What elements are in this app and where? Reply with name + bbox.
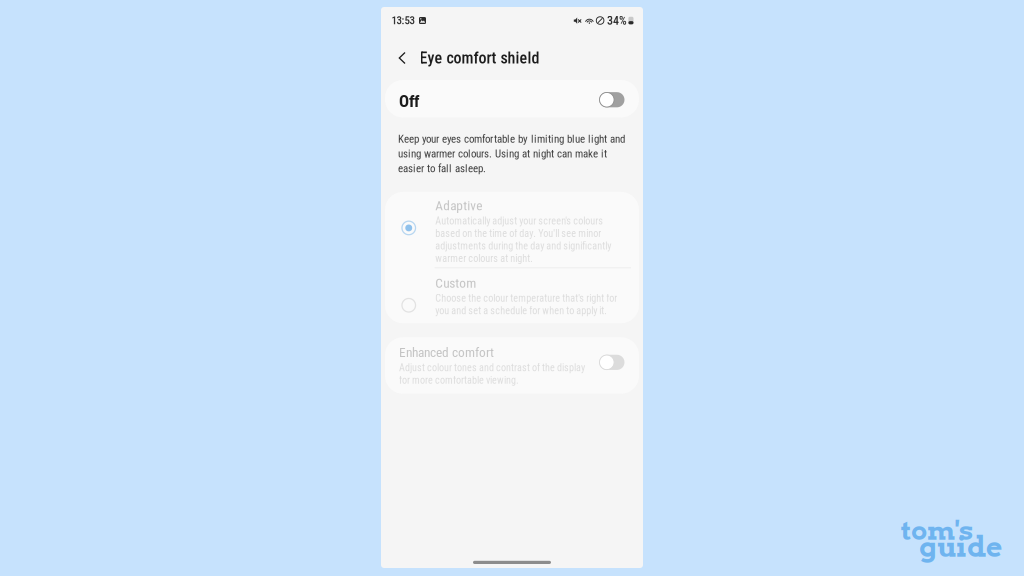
button[interactable]: Off [385, 80, 639, 117]
button[interactable]: Back [381, 42, 419, 73]
staticText: Adjust colour tones and contrast of the … [399, 362, 585, 386]
staticText: Off [399, 91, 419, 111]
button[interactable]: Custom [385, 268, 639, 323]
button[interactable]: Adaptive [385, 192, 639, 267]
staticText: Choose the colour temperature that's rig… [435, 292, 617, 317]
staticText: 13:53 [391, 14, 414, 27]
staticText: Custom [435, 275, 476, 291]
staticText: Eye comfort shield [419, 49, 539, 67]
staticText: guide [919, 529, 1002, 564]
staticText: Keep your eyes comfortable by limiting b… [398, 132, 625, 175]
button[interactable]: Enhanced comfort [385, 337, 639, 394]
staticText: Enhanced comfort [399, 345, 494, 360]
staticText: 34% [607, 13, 627, 28]
staticText: Automatically adjust your screen's colou… [435, 215, 611, 264]
staticText: Adaptive [435, 198, 482, 213]
staticText: tom's [901, 514, 973, 546]
